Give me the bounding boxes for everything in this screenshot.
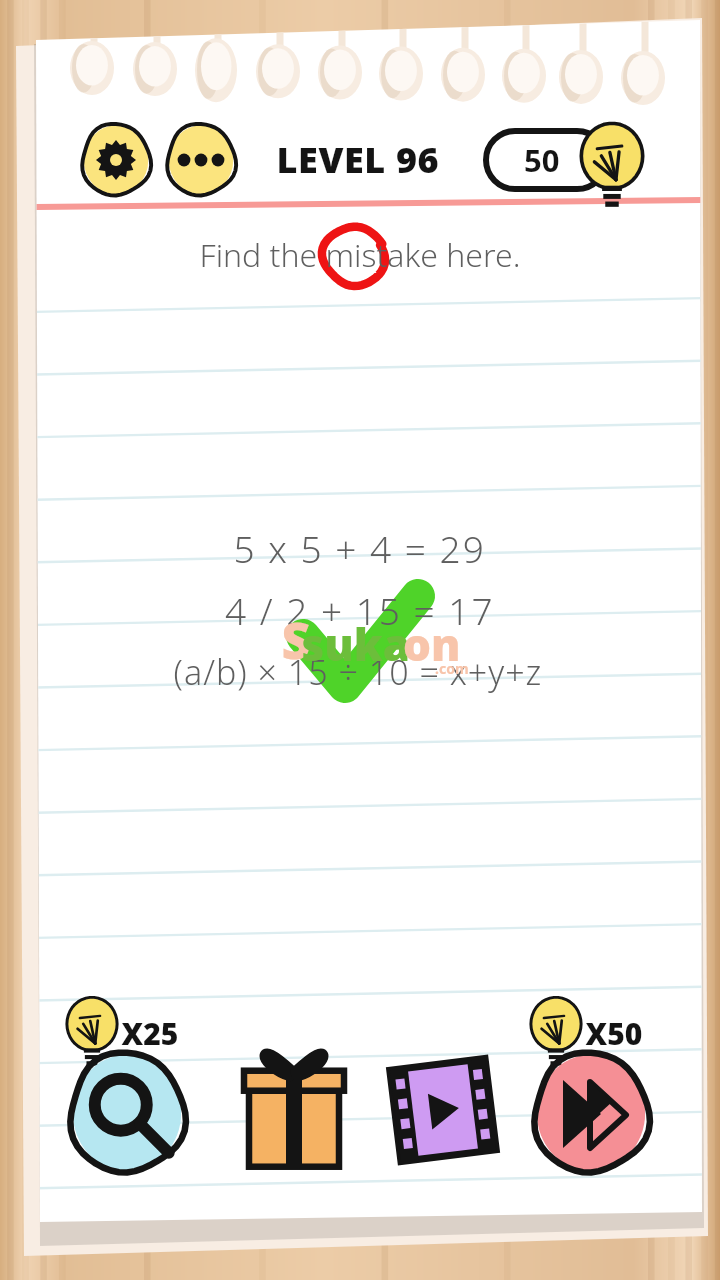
- button[interactable]: Daily gift: [234, 1054, 354, 1170]
- button[interactable]: Settings: [82, 126, 150, 194]
- button[interactable]: Hints: 50: [482, 128, 646, 192]
- button[interactable]: Watch video for hint: [384, 1052, 502, 1170]
- button[interactable]: More options: [167, 126, 235, 194]
- button[interactable]: Skip level: [526, 1050, 656, 1178]
- button[interactable]: Search hint: [62, 1050, 192, 1178]
